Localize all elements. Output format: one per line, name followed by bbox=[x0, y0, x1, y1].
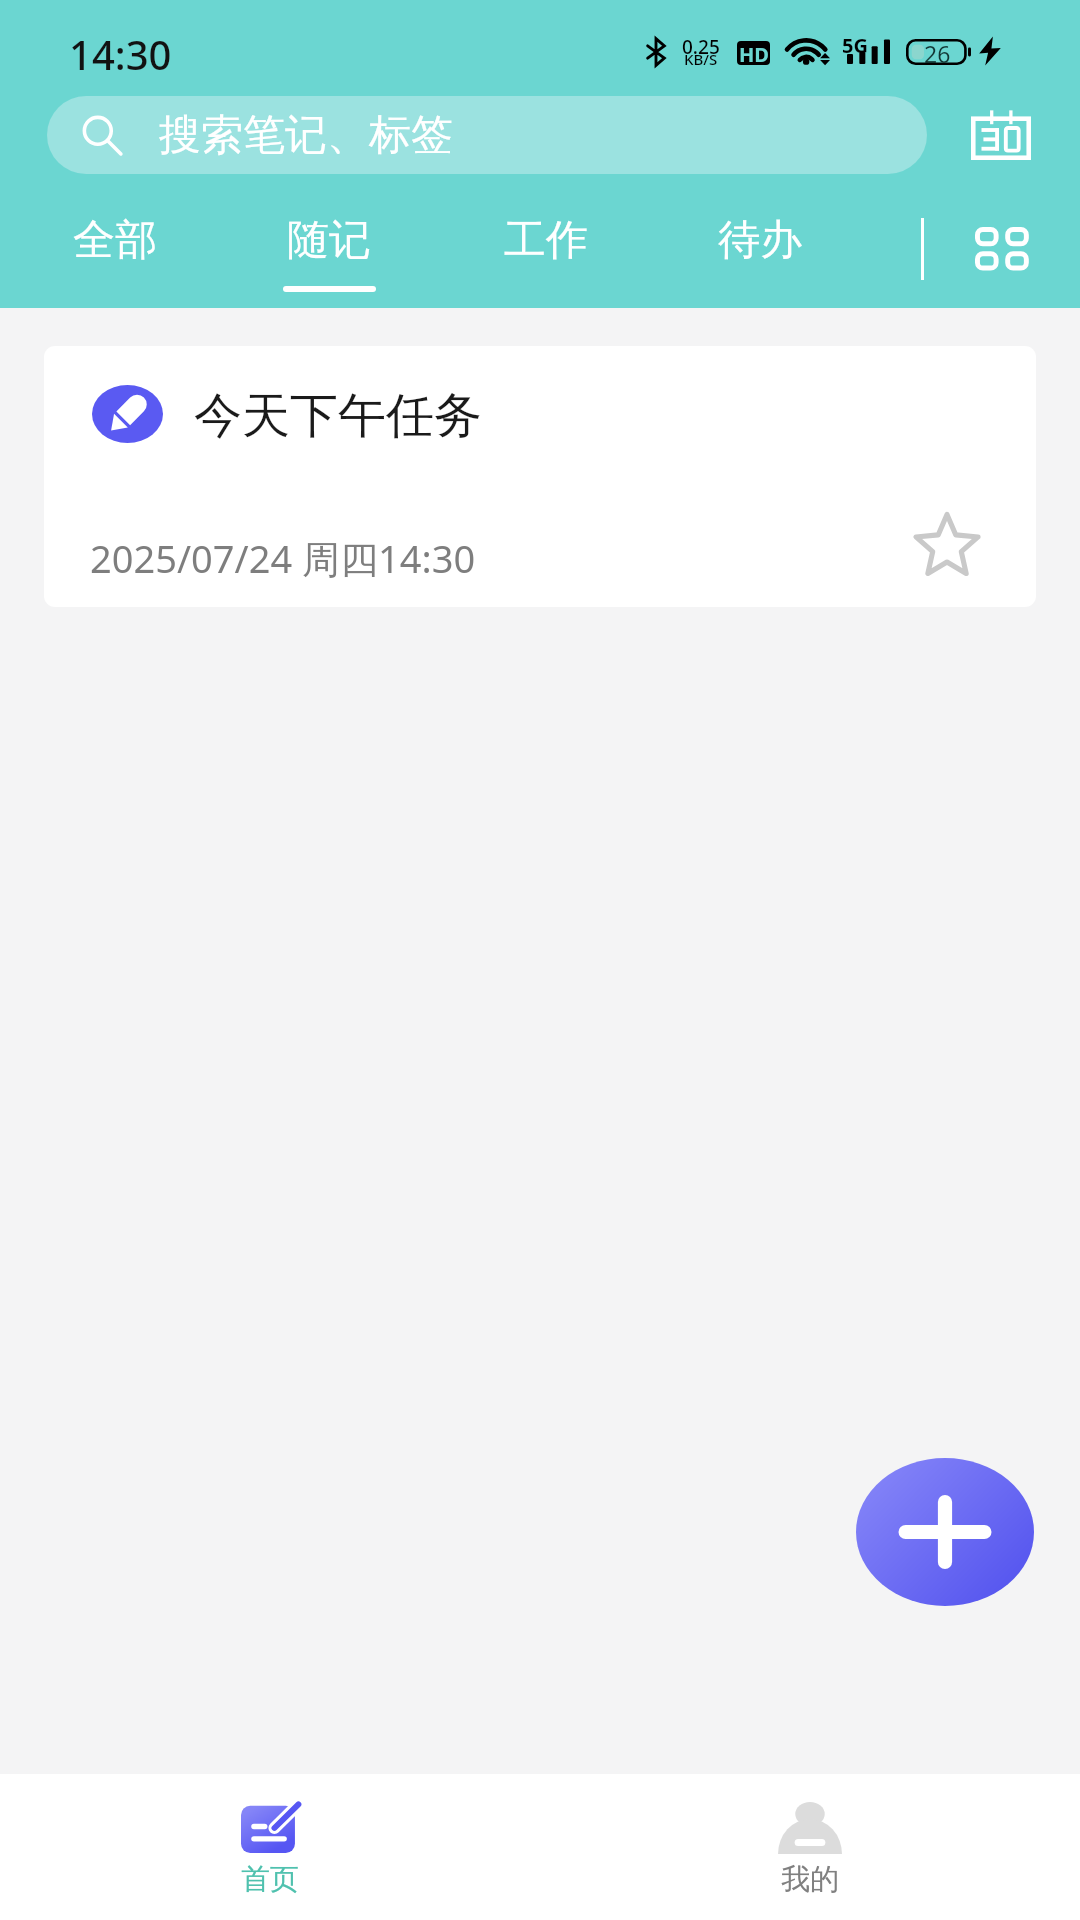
button[interactable]: 搜索笔记、标签 bbox=[47, 96, 927, 174]
staticText: 我的 bbox=[781, 1861, 839, 1898]
button[interactable]: 今天下午任务 bbox=[44, 346, 1036, 607]
button[interactable]: 待办 bbox=[698, 184, 822, 305]
staticText: 2025/07/24 周四14:30 bbox=[90, 532, 476, 584]
staticText: KB/S bbox=[684, 49, 718, 69]
staticText: 26 bbox=[924, 38, 951, 64]
staticText: 今天下午任务 bbox=[194, 386, 482, 446]
button[interactable]: 全部 bbox=[53, 184, 177, 305]
button[interactable]: Favorite bbox=[902, 500, 992, 590]
staticText: 14:30 bbox=[69, 27, 172, 81]
staticText: 0.25 bbox=[682, 34, 720, 60]
button[interactable]: 随记 bbox=[267, 184, 391, 305]
staticText: 全部 bbox=[73, 214, 157, 267]
button[interactable]: Grid view bbox=[956, 202, 1046, 292]
staticText: 工作 bbox=[504, 214, 588, 267]
staticText: 搜索笔记、标签 bbox=[159, 109, 453, 162]
button[interactable]: Add note bbox=[856, 1458, 1034, 1606]
button[interactable]: 我的 bbox=[540, 1774, 1080, 1920]
staticText: 随记 bbox=[287, 214, 371, 267]
staticText: HD bbox=[739, 41, 769, 65]
button[interactable]: 首页 bbox=[0, 1774, 540, 1920]
staticText: 待办 bbox=[718, 214, 802, 267]
staticText: 首页 bbox=[241, 1861, 299, 1898]
staticText: 5G bbox=[842, 32, 868, 59]
button[interactable]: Calendar bbox=[956, 91, 1046, 181]
button[interactable]: 工作 bbox=[484, 184, 608, 305]
